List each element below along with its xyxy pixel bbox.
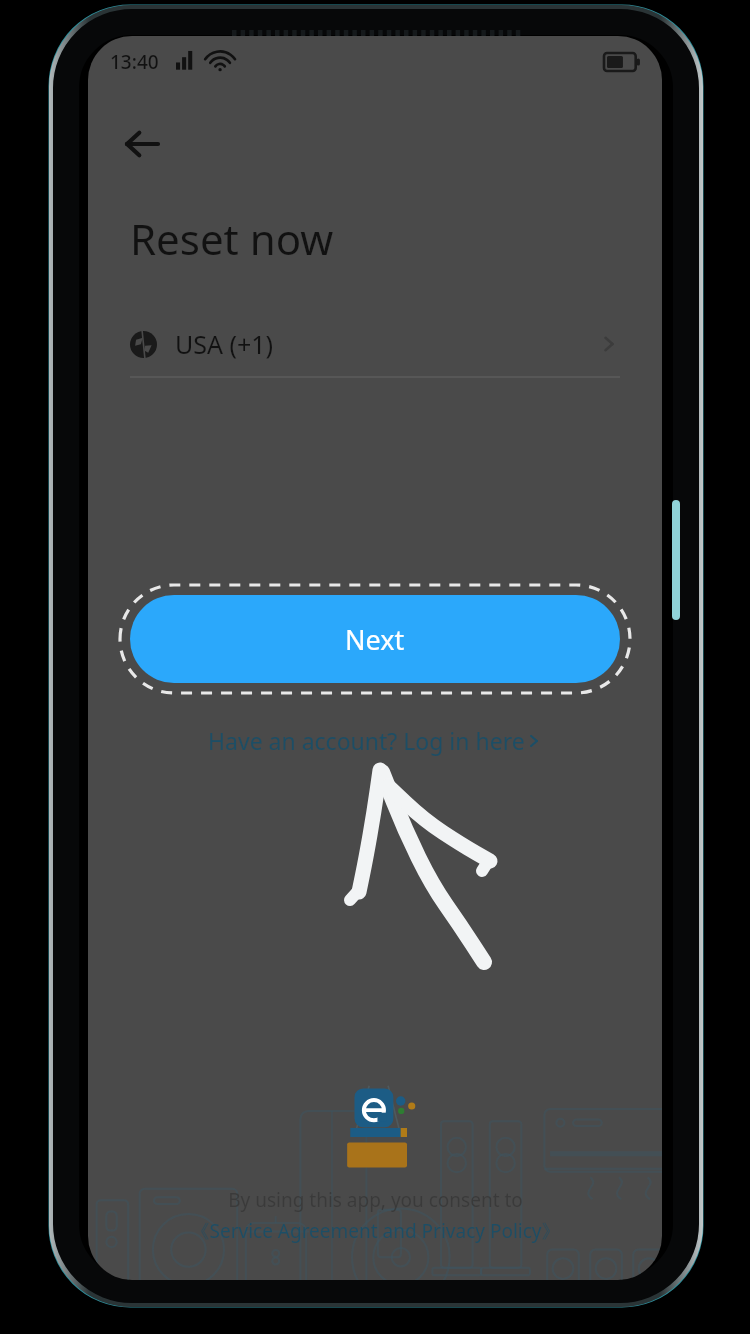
staticText: Reset now <box>130 210 334 267</box>
staticText: USA (+1) <box>175 327 274 361</box>
staticText: 《Service Agreement and Privacy Policy》 <box>190 1218 561 1244</box>
staticText: Next <box>345 621 405 658</box>
staticText: By using this app, you consent to <box>228 1187 523 1213</box>
button[interactable]: 《Service Agreement and Privacy Policy》 <box>190 1218 561 1244</box>
staticText: 13:40 <box>110 49 159 75</box>
button[interactable]: USA (+1) <box>130 311 620 377</box>
button[interactable]: Back <box>114 116 170 172</box>
button[interactable]: Next <box>130 595 620 683</box>
button[interactable]: Have an account? Log in here <box>208 725 543 756</box>
staticText: Have an account? Log in here <box>208 725 525 756</box>
